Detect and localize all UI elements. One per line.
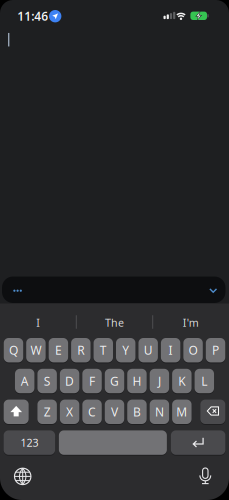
staticText: M [176,404,187,420]
staticText: H [132,373,141,389]
staticText: V [111,404,118,420]
staticText: X [66,404,73,420]
staticText: Z [44,404,51,420]
staticText: I [36,315,40,330]
staticText: U [144,342,153,358]
staticText: K [178,373,185,389]
staticText: 123 [20,435,38,450]
staticText: D [65,373,74,389]
staticText: A [21,373,29,389]
staticText: F [89,373,95,389]
staticText: E [55,342,62,358]
staticText: Y [122,342,129,358]
staticText: Q [9,342,18,358]
staticText: R [77,342,84,358]
staticText: I'm [183,315,199,330]
staticText: 11:46 [17,8,48,24]
staticText: S [44,373,51,389]
staticText: G [110,373,119,389]
staticText: W [30,342,41,358]
staticText: B [133,404,141,420]
staticText: The [105,315,124,330]
staticText: L [201,373,207,389]
staticText: C [88,404,96,420]
staticText: I [169,342,173,358]
staticText: P [212,342,219,358]
staticText: O [189,342,198,358]
staticText: N [155,404,164,420]
staticText: J [158,373,161,389]
staticText: T [100,342,107,358]
